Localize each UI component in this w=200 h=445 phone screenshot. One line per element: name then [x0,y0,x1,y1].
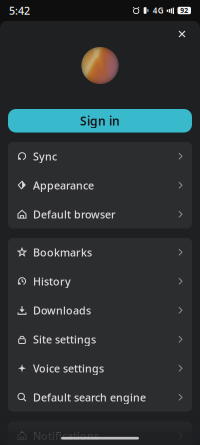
button[interactable]: History [8,267,192,295]
button[interactable]: Default search engine [8,383,192,411]
button[interactable]: Sync [8,142,192,170]
button[interactable]: Notifications [8,421,192,445]
staticText: 5:42 [9,3,30,18]
button[interactable]: Default browser [8,200,192,228]
staticText: Voice settings [33,361,104,375]
staticText: Bookmarks [33,245,92,259]
staticText: Sync [33,149,57,163]
button[interactable]: Site settings [8,325,192,353]
staticText: Sign in [80,113,120,129]
button[interactable]: Appearance [8,171,192,199]
button[interactable]: Bookmarks [8,238,192,266]
staticText: Appearance [33,178,94,192]
button[interactable]: Downloads [8,296,192,324]
staticText: Default browser [33,207,116,221]
button[interactable]: Sign in [0,109,200,132]
staticText: History [33,274,71,288]
staticText: 4G [153,5,164,16]
staticText: Site settings [33,332,96,346]
button[interactable]: Voice settings [8,354,192,382]
button[interactable]: Close [171,23,193,45]
staticText: Default search engine [33,390,146,404]
staticText: 92 [180,6,188,15]
staticText: Notifications [33,429,99,443]
staticText: Downloads [33,303,91,317]
